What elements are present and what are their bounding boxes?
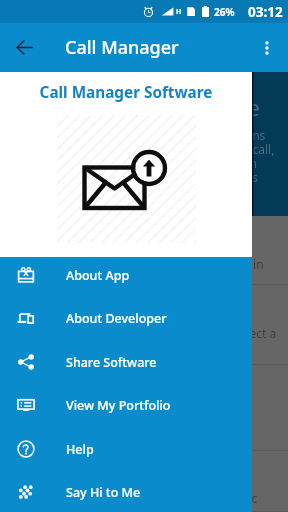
button[interactable]: Back	[8, 31, 41, 64]
staticText: Help	[66, 441, 94, 458]
staticText: Call Manager Software	[26, 92, 260, 122]
button[interactable]: View My Portfolio	[0, 383, 252, 427]
button[interactable]: Help	[0, 427, 252, 471]
staticText: 03:12	[248, 3, 283, 21]
staticText: Block the calls from unwanted numbers in	[26, 256, 264, 272]
staticText: Contacts	[26, 467, 84, 486]
staticText: Call Manager Software	[0, 82, 252, 103]
button[interactable]: About App	[0, 253, 252, 297]
staticText: Call Log	[26, 387, 78, 406]
button[interactable]: Share Software	[0, 340, 252, 384]
staticText: H	[176, 7, 182, 17]
staticText: 26%	[214, 5, 235, 19]
staticText: See your complete call history here	[26, 407, 224, 423]
button[interactable]: Say Hi to Me	[0, 470, 252, 512]
staticText: Manage all of your phone contacts. You c	[26, 490, 258, 506]
staticText: Block sms from unwanted numbers. Select …	[26, 325, 277, 341]
staticText: View My Portfolio	[66, 397, 171, 414]
staticText: SMS Blocker	[26, 305, 107, 324]
staticText: Call Manager	[65, 35, 179, 60]
staticText: About Developer	[66, 310, 167, 327]
button[interactable]: More options	[250, 31, 284, 65]
button[interactable]: About Developer	[0, 296, 252, 340]
staticText: Share Software	[66, 354, 157, 371]
staticText: This application contains various functi…	[26, 127, 275, 186]
staticText: About App	[66, 267, 130, 284]
staticText: Say Hi to Me	[66, 484, 141, 501]
